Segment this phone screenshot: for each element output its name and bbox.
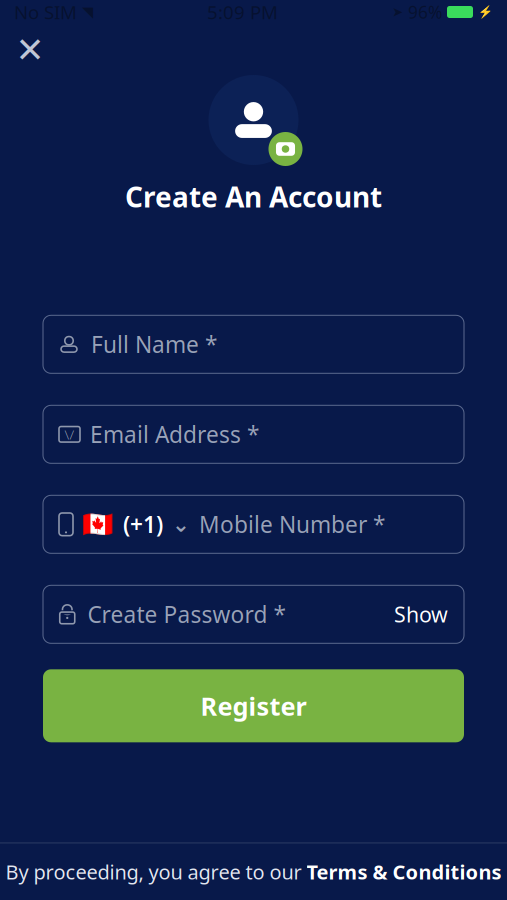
- staticText: ◥: [82, 4, 93, 20]
- staticText: Show: [394, 600, 448, 628]
- staticText: 5:09 PM: [207, 0, 278, 24]
- button[interactable]: Register: [43, 669, 464, 742]
- staticText: Email Address *: [90, 419, 259, 449]
- button[interactable]: By proceeding, you agree to our: [0, 843, 507, 900]
- staticText: Create An Account: [125, 178, 382, 215]
- staticText: No SIM: [14, 0, 77, 24]
- staticText: 96%: [408, 0, 442, 23]
- staticText: (+1): [123, 509, 163, 539]
- staticText: ⚡: [478, 5, 493, 19]
- staticText: By proceeding, you agree to our: [5, 858, 301, 885]
- staticText: \/: [64, 425, 74, 443]
- staticText: ➤: [392, 4, 403, 19]
- button[interactable]: Full Name *: [43, 315, 464, 373]
- staticText: Terms & Conditions: [306, 858, 501, 885]
- button[interactable]: \/: [43, 405, 464, 463]
- staticText: Create Password *: [87, 599, 285, 629]
- staticText: 🇨🇦: [82, 510, 114, 539]
- staticText: Register: [200, 689, 306, 723]
- staticText: Full Name *: [91, 329, 217, 359]
- staticText: ✕: [15, 30, 44, 70]
- button[interactable]: Show: [380, 590, 448, 638]
- button[interactable]: 🇨🇦: [43, 495, 464, 553]
- staticText: ⌄: [172, 512, 190, 536]
- staticText: Mobile Number *: [199, 509, 385, 539]
- button[interactable]: Close: [8, 30, 52, 70]
